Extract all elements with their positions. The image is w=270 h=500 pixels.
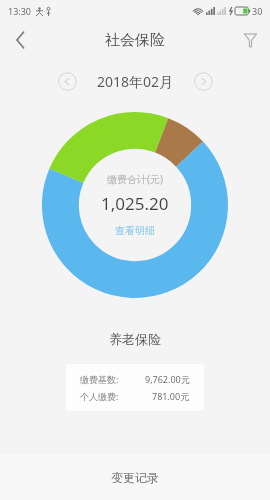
button[interactable]: 缴费基数:	[66, 364, 204, 411]
staticText: 养老保险	[0, 331, 270, 347]
staticText: 30	[252, 5, 263, 17]
staticText: 781.00元	[152, 390, 190, 402]
staticText: 13:30	[8, 5, 32, 17]
staticText: 缴费基数:	[80, 373, 119, 385]
staticText: 查看明细	[115, 224, 155, 237]
button[interactable]: Next month	[194, 72, 213, 91]
staticText: 社会保险	[105, 31, 165, 50]
staticText: 个人缴费:	[80, 390, 119, 402]
button[interactable]: Previous month	[58, 72, 77, 91]
button[interactable]: Back	[0, 22, 40, 58]
staticText: 变更记录	[111, 470, 159, 485]
staticText: 2018年02月	[97, 72, 174, 91]
button[interactable]: Filter	[230, 22, 270, 58]
staticText: 1,025.20	[101, 192, 169, 215]
button[interactable]: 变更记录	[0, 454, 270, 500]
button[interactable]: 查看明细	[111, 223, 159, 238]
staticText: 缴费合计(元)	[107, 172, 163, 186]
staticText: 9,762.00元	[145, 373, 190, 385]
